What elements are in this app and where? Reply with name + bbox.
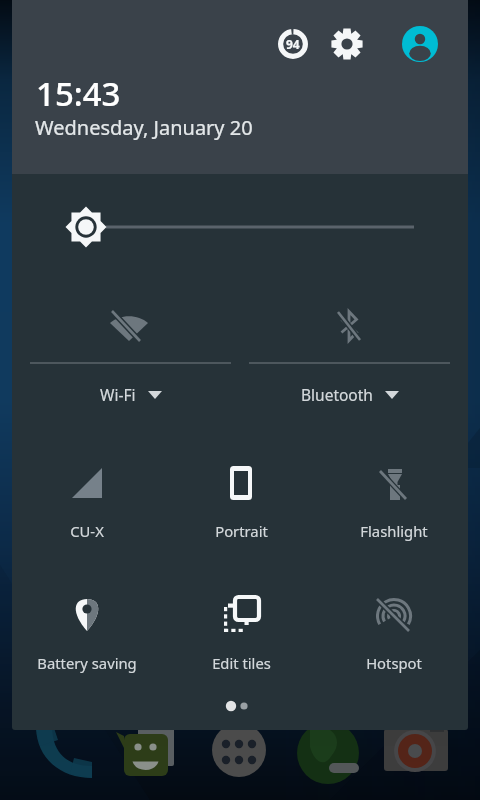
- staticText: Wednesday, January 20: [35, 114, 253, 141]
- button[interactable]: Settings: [325, 22, 369, 66]
- button[interactable]: Wi-Fi: [30, 288, 231, 408]
- staticText: Battery saving: [37, 653, 137, 673]
- staticText: Flashlight: [360, 521, 428, 541]
- staticText: Edit tiles: [212, 653, 271, 673]
- button[interactable]: Wednesday, January 20: [35, 114, 253, 141]
- button[interactable]: Portrait: [169, 455, 313, 541]
- staticText: 15:43: [36, 71, 121, 116]
- button[interactable]: 15:43: [36, 71, 121, 116]
- button[interactable]: Hotspot: [322, 587, 466, 673]
- button[interactable]: Bluetooth: [249, 288, 450, 408]
- button[interactable]: User profile: [398, 22, 442, 66]
- button[interactable]: Edit tiles: [169, 587, 313, 673]
- button[interactable]: Brightness: [30, 203, 438, 251]
- button[interactable]: Battery 94 percent: [271, 22, 315, 66]
- staticText: 94: [286, 36, 300, 52]
- button[interactable]: Flashlight: [322, 455, 466, 541]
- staticText: Hotspot: [366, 653, 422, 673]
- staticText: Portrait: [215, 521, 268, 541]
- staticText: CU-X: [70, 521, 104, 541]
- staticText: Wi-Fi: [100, 384, 136, 405]
- button[interactable]: Battery saving: [15, 587, 159, 673]
- button[interactable]: CU-X: [15, 455, 159, 541]
- staticText: Bluetooth: [301, 384, 373, 405]
